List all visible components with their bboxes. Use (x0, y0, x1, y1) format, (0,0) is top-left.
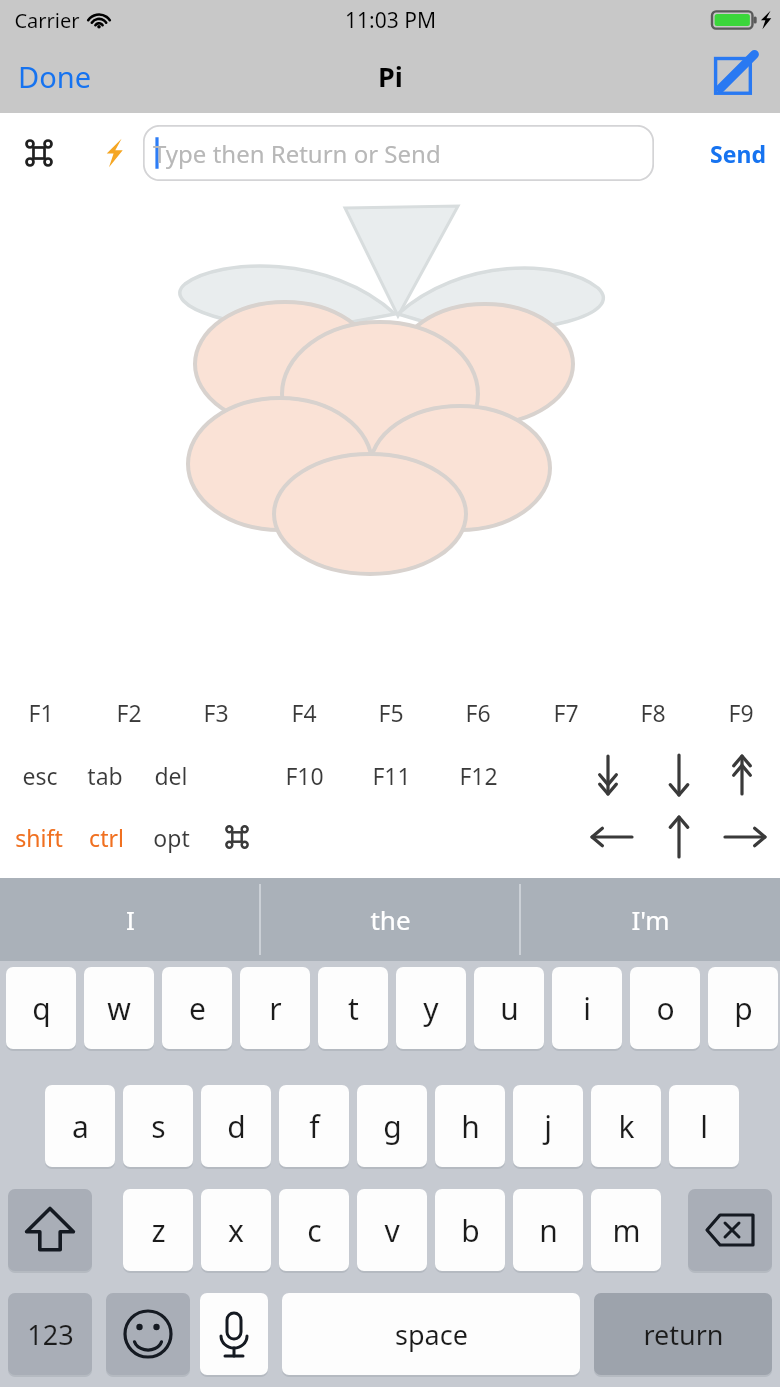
button[interactable]: s (123, 1085, 193, 1167)
button[interactable]: F4 (266, 690, 342, 734)
button[interactable]: r (240, 967, 310, 1049)
button[interactable]: n (513, 1189, 583, 1271)
staticText: x (228, 1210, 244, 1251)
button[interactable]: Send (696, 126, 780, 181)
staticText: v (384, 1210, 400, 1251)
button[interactable]: l (669, 1085, 739, 1167)
button[interactable]: Shift (8, 1189, 92, 1271)
button[interactable]: 123 (8, 1293, 92, 1375)
button[interactable]: esc (2, 753, 78, 797)
staticText: r (269, 988, 282, 1029)
button[interactable]: x (201, 1189, 271, 1271)
staticText: e (189, 988, 206, 1029)
button[interactable]: F6 (440, 690, 516, 734)
button[interactable]: i (552, 967, 622, 1049)
staticText: 123 (27, 1316, 74, 1353)
button[interactable]: Down (653, 811, 705, 863)
button[interactable]: Right (719, 811, 771, 863)
staticText: esc (22, 760, 58, 791)
staticText: the (370, 902, 411, 937)
button[interactable]: F10 (266, 753, 342, 797)
staticText: n (539, 1210, 558, 1251)
staticText: j (544, 1106, 552, 1147)
button[interactable]: j (513, 1085, 583, 1167)
button[interactable]: Command (16, 130, 62, 176)
staticText: t (348, 988, 359, 1029)
staticText: F6 (465, 697, 491, 728)
button[interactable]: b (435, 1189, 505, 1271)
staticText: m (612, 1210, 641, 1251)
button[interactable]: y (396, 967, 466, 1049)
button[interactable]: t (318, 967, 388, 1049)
button[interactable]: Compose (710, 49, 766, 105)
button[interactable]: Command key (214, 814, 260, 860)
staticText: b (461, 1210, 480, 1251)
button[interactable]: I (0, 878, 260, 961)
button[interactable]: F12 (440, 753, 516, 797)
staticText: i (583, 988, 591, 1029)
button[interactable]: a (45, 1085, 115, 1167)
button[interactable]: F8 (615, 690, 691, 734)
button[interactable]: F5 (353, 690, 429, 734)
button[interactable]: Up (653, 749, 705, 801)
button[interactable]: q (6, 967, 76, 1049)
button[interactable]: p (708, 967, 778, 1049)
staticText: F4 (291, 697, 317, 728)
button[interactable]: Left (586, 811, 638, 863)
button[interactable]: Page up (582, 749, 634, 801)
staticText: k (618, 1106, 635, 1147)
button[interactable]: z (123, 1189, 193, 1271)
staticText: opt (153, 822, 190, 853)
button[interactable]: F1 (3, 690, 79, 734)
staticText: return (643, 1316, 724, 1353)
staticText: d (227, 1106, 246, 1147)
button[interactable]: f (279, 1085, 349, 1167)
button[interactable]: c (279, 1189, 349, 1271)
button[interactable]: e (162, 967, 232, 1049)
button[interactable]: space (282, 1293, 580, 1375)
button[interactable]: F7 (528, 690, 604, 734)
button[interactable]: d (201, 1085, 271, 1167)
button[interactable]: the (260, 878, 520, 961)
staticText: Send (710, 138, 766, 169)
button[interactable]: o (630, 967, 700, 1049)
button[interactable]: tab (67, 753, 143, 797)
button[interactable]: h (435, 1085, 505, 1167)
staticText: F11 (372, 760, 411, 791)
button[interactable]: opt (133, 815, 209, 859)
staticText: o (656, 988, 675, 1029)
staticText: q (32, 988, 51, 1029)
button[interactable]: w (84, 967, 154, 1049)
staticText: a (72, 1106, 89, 1147)
button[interactable]: k (591, 1085, 661, 1167)
button[interactable]: ctrl (68, 815, 144, 859)
staticText: c (307, 1210, 322, 1251)
button[interactable]: F9 (703, 690, 779, 734)
staticText: ctrl (89, 822, 124, 853)
button[interactable]: Page down (716, 749, 768, 801)
staticText: Done (18, 57, 91, 96)
button[interactable]: F3 (178, 690, 254, 734)
button[interactable]: Quick action (90, 130, 136, 176)
staticText: Carrier (14, 7, 80, 34)
button[interactable]: shift (1, 815, 77, 859)
button[interactable]: F11 (353, 753, 429, 797)
button[interactable]: v (357, 1189, 427, 1271)
staticText: y (423, 988, 439, 1029)
button[interactable]: Type then Return or Send (143, 125, 654, 181)
button[interactable]: I'm (520, 878, 780, 961)
button[interactable]: Dictate (200, 1293, 268, 1375)
button[interactable]: F2 (91, 690, 167, 734)
button[interactable]: g (357, 1085, 427, 1167)
button[interactable]: Done (0, 47, 109, 106)
button[interactable]: Backspace (688, 1189, 772, 1271)
button[interactable]: return (594, 1293, 772, 1375)
staticText: F2 (116, 697, 142, 728)
button[interactable]: del (133, 753, 209, 797)
staticText: space (395, 1316, 468, 1353)
button[interactable]: Emoji (106, 1293, 190, 1375)
button[interactable]: m (591, 1189, 661, 1271)
staticText: F9 (728, 697, 754, 728)
staticText: F7 (553, 697, 579, 728)
button[interactable]: u (474, 967, 544, 1049)
